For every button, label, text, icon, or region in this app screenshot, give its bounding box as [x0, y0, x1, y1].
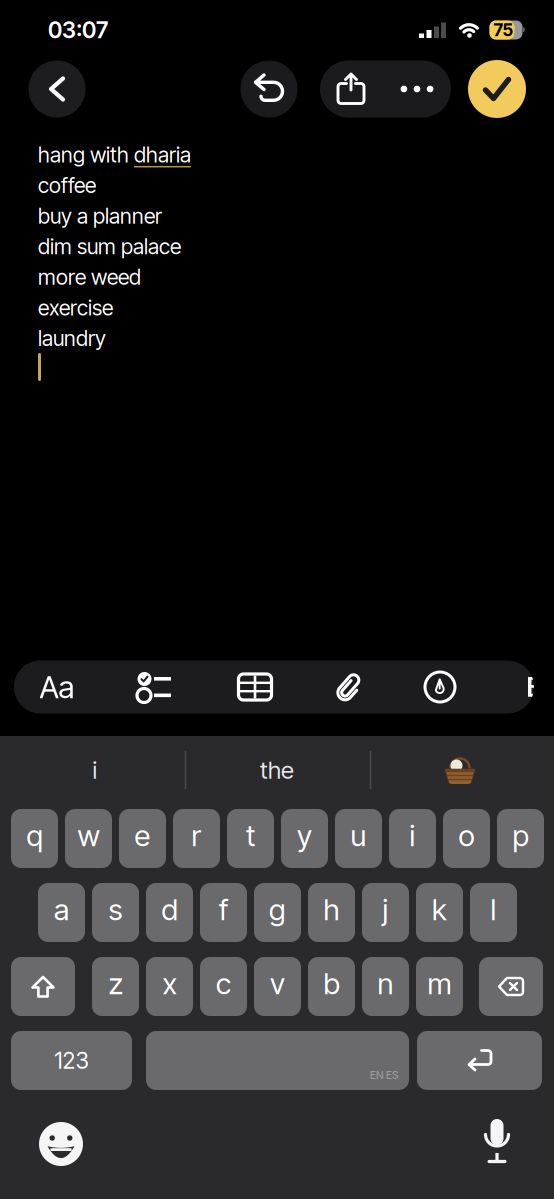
button[interactable]: More	[389, 60, 445, 117]
button[interactable]: Share	[323, 60, 379, 117]
staticText: z	[108, 966, 122, 1001]
button[interactable]: b	[308, 957, 355, 1016]
button[interactable]: Numbers	[11, 1031, 132, 1090]
button[interactable]: n	[362, 957, 409, 1016]
button[interactable]: y	[281, 809, 328, 868]
staticText: c	[216, 966, 231, 1001]
staticText: i	[92, 755, 97, 784]
staticText: l	[490, 892, 496, 927]
button[interactable]: o	[443, 809, 490, 868]
staticText: r	[191, 818, 201, 853]
staticText: u	[350, 818, 366, 853]
button[interactable]: i	[389, 809, 436, 868]
staticText: k	[432, 892, 447, 927]
staticText: s	[108, 892, 122, 927]
button[interactable]: u	[335, 809, 382, 868]
button[interactable]: q	[11, 809, 58, 868]
staticText: w	[77, 818, 99, 853]
button[interactable]: the	[192, 743, 362, 797]
button[interactable]: Format	[27, 660, 87, 713]
button[interactable]: g	[254, 883, 301, 942]
staticText: g	[269, 892, 286, 927]
staticText: x	[162, 966, 176, 1001]
staticText: coffee	[38, 172, 96, 198]
button[interactable]: r	[173, 809, 220, 868]
staticText: buy a planner	[38, 203, 162, 229]
button[interactable]: Bold	[515, 660, 554, 713]
button[interactable]: Table	[225, 660, 285, 713]
button[interactable]: Checklist	[124, 660, 184, 713]
button[interactable]: a	[38, 883, 85, 942]
staticText: n	[377, 966, 393, 1001]
button[interactable]: Back	[28, 60, 85, 117]
staticText: o	[458, 818, 474, 853]
button[interactable]: Shift	[11, 957, 75, 1016]
staticText: b	[323, 966, 339, 1001]
button[interactable]: h	[308, 883, 355, 942]
staticText: p	[512, 818, 528, 853]
staticText: 03:07	[48, 16, 108, 44]
button[interactable]: x	[146, 957, 193, 1016]
staticText: B	[526, 671, 543, 703]
staticText: y	[297, 818, 312, 853]
button[interactable]: s	[92, 883, 139, 942]
button[interactable]: w	[65, 809, 112, 868]
staticText: m	[427, 966, 451, 1001]
button[interactable]: d	[146, 883, 193, 942]
staticText: 75	[493, 19, 513, 40]
staticText: h	[323, 892, 339, 927]
staticText: e	[134, 818, 150, 853]
staticText: d	[161, 892, 177, 927]
staticText: Aa	[39, 668, 74, 705]
button[interactable]: p	[497, 809, 544, 868]
staticText: t	[246, 818, 255, 853]
button[interactable]: Attach	[320, 660, 380, 713]
button[interactable]: v	[254, 957, 301, 1016]
button[interactable]: i	[10, 743, 180, 797]
button[interactable]: Emoji	[26, 1114, 96, 1174]
staticText: v	[270, 966, 285, 1001]
button[interactable]: Draw	[410, 660, 470, 713]
staticText: f	[219, 892, 228, 927]
button[interactable]: e	[119, 809, 166, 868]
staticText: 123	[54, 1047, 88, 1074]
button[interactable]: basket emoji	[375, 743, 545, 797]
staticText: EN ES	[370, 1068, 398, 1081]
staticText: exercise	[38, 295, 113, 321]
button[interactable]: Delete	[479, 957, 543, 1016]
staticText: more weed	[38, 264, 141, 290]
button[interactable]: Done	[468, 60, 526, 118]
button[interactable]: f	[200, 883, 247, 942]
button[interactable]: space	[146, 1031, 409, 1090]
staticText: laundry	[38, 325, 106, 351]
staticText: hang with dharia	[38, 142, 191, 168]
staticText: j	[382, 892, 388, 927]
staticText: a	[54, 892, 69, 927]
button[interactable]: j	[362, 883, 409, 942]
button[interactable]: return	[417, 1031, 542, 1090]
staticText: dim sum palace	[38, 234, 181, 259]
button[interactable]: c	[200, 957, 247, 1016]
button[interactable]: z	[92, 957, 139, 1016]
staticText: the	[260, 755, 294, 784]
button[interactable]: Dictate	[467, 1111, 527, 1171]
staticText: q	[26, 818, 42, 853]
button[interactable]: Undo	[240, 60, 297, 117]
button[interactable]: l	[470, 883, 517, 942]
button[interactable]: m	[416, 957, 463, 1016]
button[interactable]: k	[416, 883, 463, 942]
staticText: i	[409, 818, 415, 853]
button[interactable]: t	[227, 809, 274, 868]
